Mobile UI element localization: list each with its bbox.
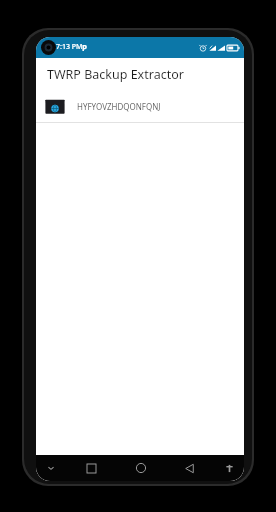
button[interactable]: HYFYOVZHDQONFQNJ bbox=[36, 90, 244, 122]
staticText: 7:13 PM bbox=[56, 42, 83, 52]
staticText: HYFYOVZHDQONFQNJ bbox=[77, 101, 161, 112]
staticText: TWRP Backup Extractor bbox=[47, 66, 184, 83]
button[interactable]: Hide keyboard bbox=[36, 455, 66, 481]
button[interactable]: Switch input method bbox=[214, 455, 244, 481]
button[interactable]: Home bbox=[116, 455, 165, 481]
button[interactable]: Recent apps bbox=[66, 455, 116, 481]
staticText: P bbox=[82, 42, 87, 53]
button[interactable]: Back bbox=[165, 455, 214, 481]
